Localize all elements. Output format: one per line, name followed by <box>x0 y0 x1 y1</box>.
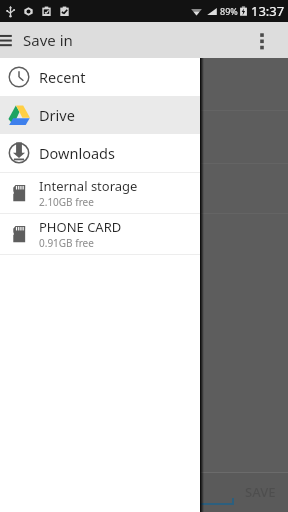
staticText: Save in <box>23 30 73 50</box>
staticText: Internal storage <box>39 177 138 195</box>
staticText: 89% <box>220 5 238 17</box>
staticText: SAVE <box>245 483 276 501</box>
button[interactable]: Downloads <box>0 134 200 172</box>
staticText: Drive <box>39 105 75 125</box>
button[interactable]: PHONE CARD <box>0 214 200 254</box>
button[interactable]: Recent <box>0 58 200 96</box>
staticText: 0.91GB free <box>39 236 94 250</box>
staticText: 2.10GB free <box>39 195 94 209</box>
button[interactable]: Drive <box>0 96 200 134</box>
staticText: Recent <box>39 67 86 87</box>
button[interactable]: Open navigation menu <box>0 29 14 51</box>
button[interactable]: More options <box>250 28 274 52</box>
button[interactable]: Internal storage <box>0 173 200 213</box>
staticText: 13:37 <box>251 2 285 20</box>
staticText: PHONE CARD <box>39 218 122 236</box>
staticText: Downloads <box>39 143 115 163</box>
